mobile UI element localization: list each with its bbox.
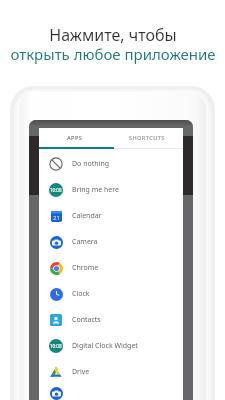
button[interactable]: 10:08 bbox=[39, 333, 183, 359]
staticText: APPS bbox=[67, 134, 83, 142]
staticText: Camera bbox=[72, 237, 98, 247]
staticText: Drive bbox=[72, 367, 90, 377]
staticText: Clock bbox=[72, 289, 90, 299]
staticText: Contacts bbox=[72, 315, 101, 325]
button[interactable]: Clock bbox=[39, 281, 183, 307]
staticText: Bring me here bbox=[72, 185, 119, 195]
staticText: 10:08 bbox=[50, 343, 62, 349]
button[interactable]: 10:08 bbox=[39, 177, 183, 203]
button[interactable] bbox=[39, 385, 183, 400]
button[interactable]: APPS bbox=[39, 128, 111, 147]
button[interactable]: Camera bbox=[39, 229, 183, 255]
button[interactable]: SHORTCUTS bbox=[111, 128, 183, 147]
button[interactable]: Drive bbox=[39, 359, 183, 385]
staticText: Digital Clock Widget bbox=[72, 341, 138, 351]
staticText: Do nothing bbox=[72, 159, 110, 169]
button[interactable]: Contacts bbox=[39, 307, 183, 333]
staticText: открыть любое приложение bbox=[10, 44, 216, 64]
staticText: Calendar bbox=[72, 211, 102, 221]
staticText: SHORTCUTS bbox=[129, 134, 165, 142]
staticText: 21 bbox=[53, 214, 60, 222]
button[interactable]: 21 bbox=[39, 203, 183, 229]
staticText: Chrome bbox=[72, 263, 99, 273]
staticText: Нажмите, чтобы bbox=[49, 24, 177, 46]
button[interactable]: Do nothing bbox=[39, 151, 183, 177]
button[interactable]: Chrome bbox=[39, 255, 183, 281]
staticText: 10:08 bbox=[50, 187, 62, 193]
